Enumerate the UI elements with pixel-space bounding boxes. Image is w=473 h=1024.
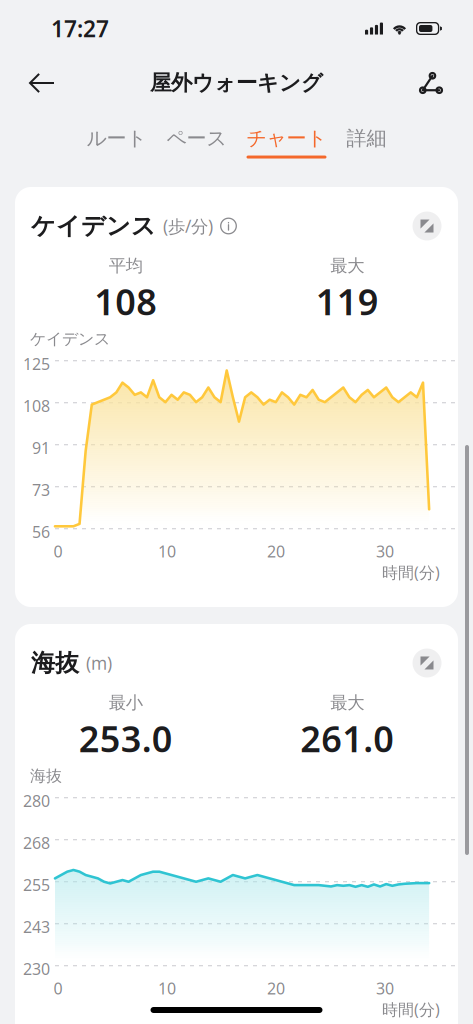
staticText: 119: [316, 277, 379, 325]
button[interactable]: Back: [22, 62, 62, 104]
staticText: ケイデンス: [30, 329, 110, 349]
button[interactable]: Share route: [411, 62, 451, 104]
staticText: 屋外ウォーキング: [150, 70, 323, 96]
staticText: ケイデンス: [31, 211, 156, 241]
staticText: 230: [23, 958, 50, 979]
staticText: 0: [53, 978, 62, 999]
staticText: (m): [86, 651, 112, 674]
button[interactable]: Expand chart: [410, 646, 444, 680]
staticText: 最大: [330, 692, 364, 713]
staticText: 平均: [109, 255, 143, 276]
button[interactable]: ペース: [166, 126, 226, 159]
staticText: 253.0: [79, 714, 173, 762]
staticText: 243: [23, 916, 50, 937]
staticText: 詳細: [346, 126, 386, 151]
staticText: 時間(分): [382, 999, 440, 1020]
staticText: 73: [32, 479, 50, 500]
staticText: 108: [94, 277, 157, 325]
staticText: ペース: [166, 126, 226, 151]
staticText: 30: [376, 541, 394, 562]
staticText: 20: [267, 978, 285, 999]
staticText: 海抜: [31, 648, 79, 678]
button[interactable]: 詳細: [346, 126, 386, 159]
button[interactable]: Expand chart: [410, 209, 444, 243]
button[interactable]: チャート: [246, 126, 326, 159]
staticText: 56: [32, 521, 50, 542]
staticText: 10: [158, 541, 176, 562]
staticText: 280: [23, 790, 50, 811]
staticText: 108: [23, 395, 50, 416]
staticText: 91: [32, 437, 50, 458]
staticText: 255: [23, 874, 50, 895]
staticText: 10: [158, 978, 176, 999]
staticText: 30: [376, 978, 394, 999]
staticText: チャート: [246, 126, 326, 151]
staticText: 261.0: [300, 714, 394, 762]
staticText: 最小: [109, 692, 143, 713]
button[interactable]: ルート: [86, 126, 146, 159]
staticText: 0: [53, 541, 62, 562]
staticText: (歩/分): [163, 214, 213, 237]
staticText: 125: [23, 353, 50, 374]
staticText: 268: [23, 832, 50, 853]
staticText: 最大: [330, 255, 364, 276]
staticText: ルート: [86, 126, 146, 151]
staticText: 17:27: [51, 13, 109, 43]
staticText: 20: [267, 541, 285, 562]
staticText: 海抜: [30, 766, 62, 786]
staticText: 時間(分): [382, 562, 440, 583]
